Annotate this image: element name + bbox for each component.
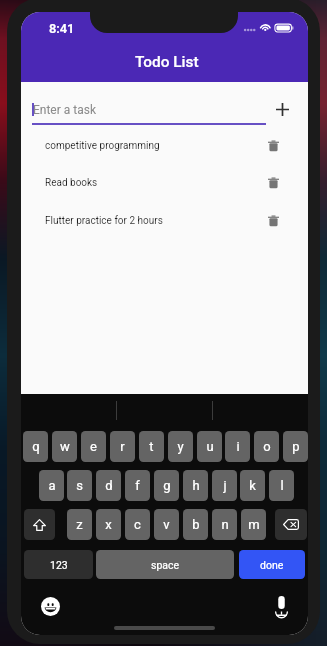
staticText: h [192, 478, 200, 493]
button[interactable]: 123 [24, 550, 93, 579]
button[interactable]: Delete [260, 208, 286, 234]
button[interactable]: u [197, 431, 222, 462]
staticText: t [149, 439, 154, 454]
button[interactable]: z [67, 509, 92, 540]
staticText: Enter a task [33, 103, 97, 117]
button[interactable]: f [125, 470, 150, 501]
button[interactable]: w [52, 431, 77, 462]
staticText: space [151, 559, 180, 571]
button[interactable]: v [154, 509, 179, 540]
staticText: y [177, 439, 184, 454]
button[interactable]: y [168, 431, 193, 462]
staticText: j [223, 478, 227, 493]
button[interactable]: Shift [24, 509, 55, 540]
button[interactable]: n [212, 509, 237, 540]
button[interactable]: h [183, 470, 208, 501]
button[interactable]: d [96, 470, 121, 501]
staticText: m [248, 517, 260, 532]
staticText: r [120, 439, 125, 454]
button[interactable]: Emoji keyboard [37, 593, 63, 619]
staticText: d [105, 478, 113, 493]
button[interactable]: Backspace [275, 509, 307, 540]
button[interactable]: Add task [268, 95, 296, 123]
button[interactable]: s [67, 470, 92, 501]
staticText: a [48, 478, 56, 493]
button[interactable]: g [154, 470, 179, 501]
button[interactable]: Read books [21, 168, 308, 198]
button[interactable]: x [96, 509, 121, 540]
staticText: f [135, 478, 140, 493]
staticText: Flutter practice for 2 hours [45, 215, 163, 227]
staticText: n [221, 517, 229, 532]
button[interactable]: i [225, 431, 250, 462]
staticText: q [32, 439, 40, 454]
staticText: z [76, 517, 83, 532]
button[interactable]: k [240, 470, 265, 501]
button[interactable]: competitive programming [21, 131, 308, 161]
staticText: v [163, 517, 170, 532]
staticText: x [105, 517, 112, 532]
staticText: i [236, 439, 240, 454]
button[interactable]: b [183, 509, 208, 540]
button[interactable]: o [254, 431, 279, 462]
staticText: p [292, 439, 300, 454]
button[interactable]: Voice input [268, 590, 294, 616]
staticText: o [263, 439, 271, 454]
button[interactable]: p [283, 431, 308, 462]
staticText: c [134, 517, 141, 532]
button[interactable]: q [23, 431, 48, 462]
button[interactable]: t [139, 431, 164, 462]
button[interactable]: done [239, 550, 305, 579]
button[interactable]: m [241, 509, 266, 540]
button[interactable]: j [212, 470, 237, 501]
staticText: g [163, 478, 171, 493]
staticText: Read books [45, 177, 98, 189]
staticText: Todo List [135, 53, 199, 71]
staticText: e [90, 439, 97, 454]
button[interactable]: Delete [260, 170, 286, 196]
button[interactable]: r [110, 431, 135, 462]
button[interactable]: Delete [260, 133, 286, 159]
staticText: k [249, 478, 256, 493]
staticText: b [192, 517, 200, 532]
staticText: w [60, 439, 70, 454]
button[interactable]: space [96, 550, 234, 579]
button[interactable]: e [81, 431, 106, 462]
staticText: u [206, 439, 214, 454]
staticText: s [76, 478, 83, 493]
button[interactable]: a [39, 470, 64, 501]
button[interactable]: Flutter practice for 2 hours [21, 206, 308, 236]
staticText: done [260, 559, 284, 571]
staticText: 123 [50, 559, 68, 571]
staticText: 8:41 [49, 21, 75, 36]
staticText: competitive programming [45, 140, 160, 152]
button[interactable]: Enter a task [32, 97, 266, 126]
button[interactable]: c [125, 509, 150, 540]
button[interactable]: l [269, 470, 294, 501]
staticText: l [280, 478, 284, 493]
